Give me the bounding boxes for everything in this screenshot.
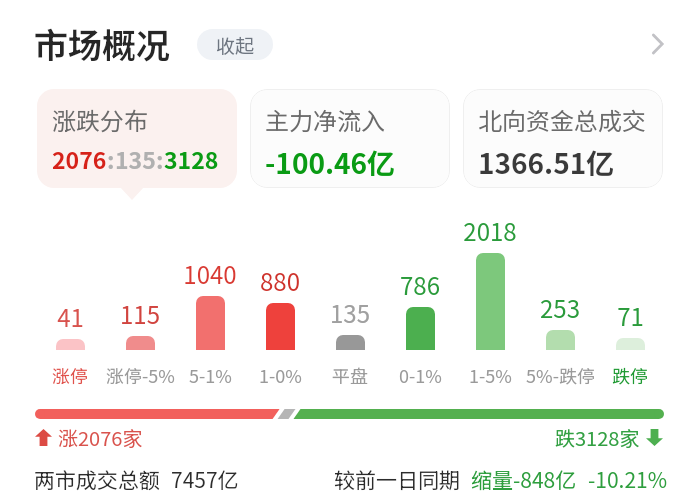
staticText: 平盘 [332, 362, 368, 388]
staticText: 7457亿 [171, 464, 239, 494]
staticText: 3128 [164, 142, 219, 175]
staticText: 41 [57, 299, 84, 334]
staticText: 1040 [183, 256, 237, 291]
staticText: : [107, 142, 115, 175]
staticText: 1-0% [259, 362, 302, 388]
staticText: 涨停 [52, 362, 88, 388]
staticText: 2018 [463, 213, 517, 248]
staticText: 两市成交总额 [34, 464, 160, 494]
staticText: 0-1% [399, 362, 442, 388]
staticText: 5%-跌停 [526, 362, 595, 388]
staticText: 5-1% [189, 362, 232, 388]
staticText: 涨停-5% [106, 362, 175, 388]
staticText: 跌3128家 [555, 423, 640, 452]
staticText: 786 [400, 267, 440, 302]
staticText: 2076 [52, 142, 107, 175]
staticText: 涨跌分布 [52, 102, 148, 137]
staticText: 较前一日同期 [334, 464, 460, 494]
staticText: 收起 [216, 31, 255, 59]
staticText: 1-5% [469, 362, 512, 388]
staticText: 涨2076家 [58, 423, 143, 452]
staticText: 北向资金总成交 [478, 102, 646, 137]
staticText: 市场概况 [34, 19, 170, 68]
staticText: 主力净流入 [265, 102, 385, 137]
button[interactable]: 主力净流入 [250, 89, 450, 188]
button[interactable]: 北向资金总成交 [463, 89, 663, 188]
staticText: 缩量-848亿 [471, 464, 577, 494]
staticText: 跌停 [612, 362, 648, 388]
button[interactable]: 涨跌分布 [37, 89, 237, 188]
staticText: 253 [540, 290, 580, 325]
staticText: 135 [115, 142, 156, 175]
button[interactable]: 收起 [197, 29, 273, 60]
staticText: 880 [260, 263, 300, 298]
staticText: : [156, 142, 164, 175]
staticText: -10.21% [588, 464, 668, 494]
button[interactable]: 展开详情 [639, 26, 675, 62]
staticText: 71 [617, 298, 644, 333]
staticText: -100.46亿 [265, 142, 396, 183]
staticText: 115 [120, 296, 160, 331]
staticText: 135 [330, 295, 370, 330]
staticText: 1366.51亿 [478, 142, 615, 183]
